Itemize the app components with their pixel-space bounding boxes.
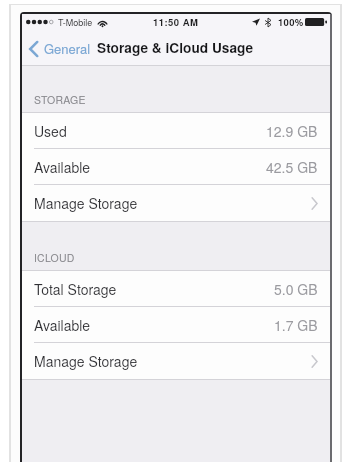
staticText: General (44, 39, 91, 58)
staticText: Manage Storage (34, 193, 138, 213)
button[interactable]: Manage Storage (22, 185, 330, 221)
staticText: Storage & iCloud Usage (97, 38, 254, 58)
button[interactable]: Available (22, 149, 330, 185)
staticText: T-Mobile (58, 16, 93, 29)
staticText: Available (34, 157, 91, 177)
staticText: Total Storage (34, 279, 117, 299)
button[interactable]: Used (22, 113, 330, 149)
staticText: ICLOUD (34, 250, 75, 265)
staticText: 42.5 GB (266, 157, 318, 177)
staticText: Used (34, 121, 67, 141)
staticText: 1.7 GB (274, 315, 318, 335)
staticText: 5.0 GB (274, 279, 318, 299)
staticText: 12.9 GB (266, 121, 318, 141)
button[interactable]: Available (22, 307, 330, 343)
button[interactable]: Total Storage (22, 271, 330, 307)
button[interactable]: Manage Storage (22, 343, 330, 379)
button[interactable]: Back to General (27, 34, 93, 63)
staticText: Available (34, 315, 91, 335)
staticText: 100% (278, 15, 304, 29)
staticText: 11:50 AM (153, 15, 199, 29)
staticText: Manage Storage (34, 351, 138, 371)
staticText: STORAGE (34, 92, 86, 107)
